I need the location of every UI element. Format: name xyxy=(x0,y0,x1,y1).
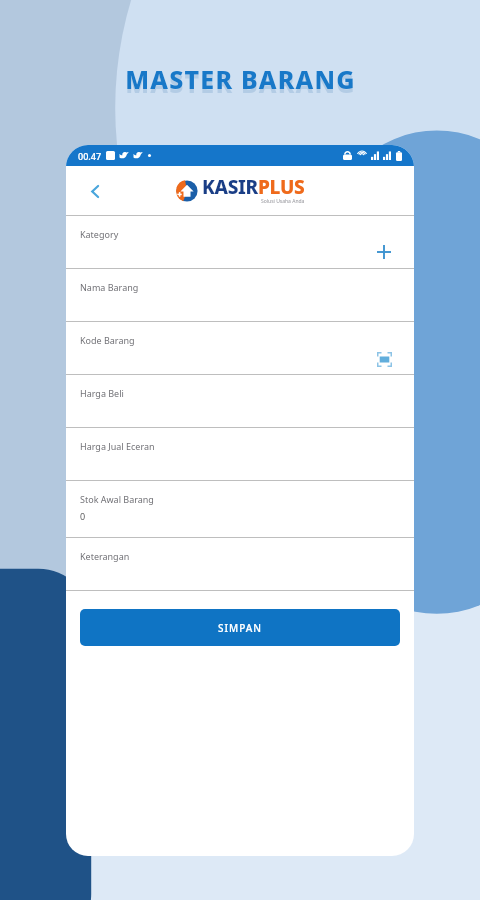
staticText: 0 xyxy=(80,510,86,522)
button[interactable]: Kategory xyxy=(66,216,414,268)
staticText: Kategory xyxy=(80,228,119,240)
staticText: Stok Awal Barang xyxy=(80,493,154,505)
staticText: PLUS xyxy=(258,174,305,200)
staticText: Keterangan xyxy=(80,550,130,562)
button[interactable]: Harga Beli xyxy=(66,375,414,427)
staticText: 00.47 xyxy=(78,150,102,162)
button[interactable]: Stok Awal Barang xyxy=(66,481,414,537)
button[interactable]: Scan barcode xyxy=(372,347,396,371)
staticText: MASTER BARANG xyxy=(125,62,356,96)
staticText: KASIR xyxy=(202,174,258,200)
button[interactable]: SIMPAN xyxy=(80,609,400,646)
staticText: Harga Jual Eceran xyxy=(80,440,155,452)
button[interactable]: Harga Jual Eceran xyxy=(66,428,414,480)
staticText: Nama Barang xyxy=(80,281,139,293)
button[interactable]: Add category xyxy=(372,240,396,264)
staticText: Solusi Usaha Anda xyxy=(261,198,305,205)
staticText: Harga Beli xyxy=(80,387,124,399)
staticText: Kode Barang xyxy=(80,334,135,346)
button[interactable]: Nama Barang xyxy=(66,269,414,321)
button[interactable]: Keterangan xyxy=(66,538,414,590)
staticText: SIMPAN xyxy=(218,621,263,635)
button[interactable]: Back xyxy=(80,176,110,206)
staticText: MASTER BARANG xyxy=(125,66,356,100)
button[interactable]: Kode Barang xyxy=(66,322,414,374)
